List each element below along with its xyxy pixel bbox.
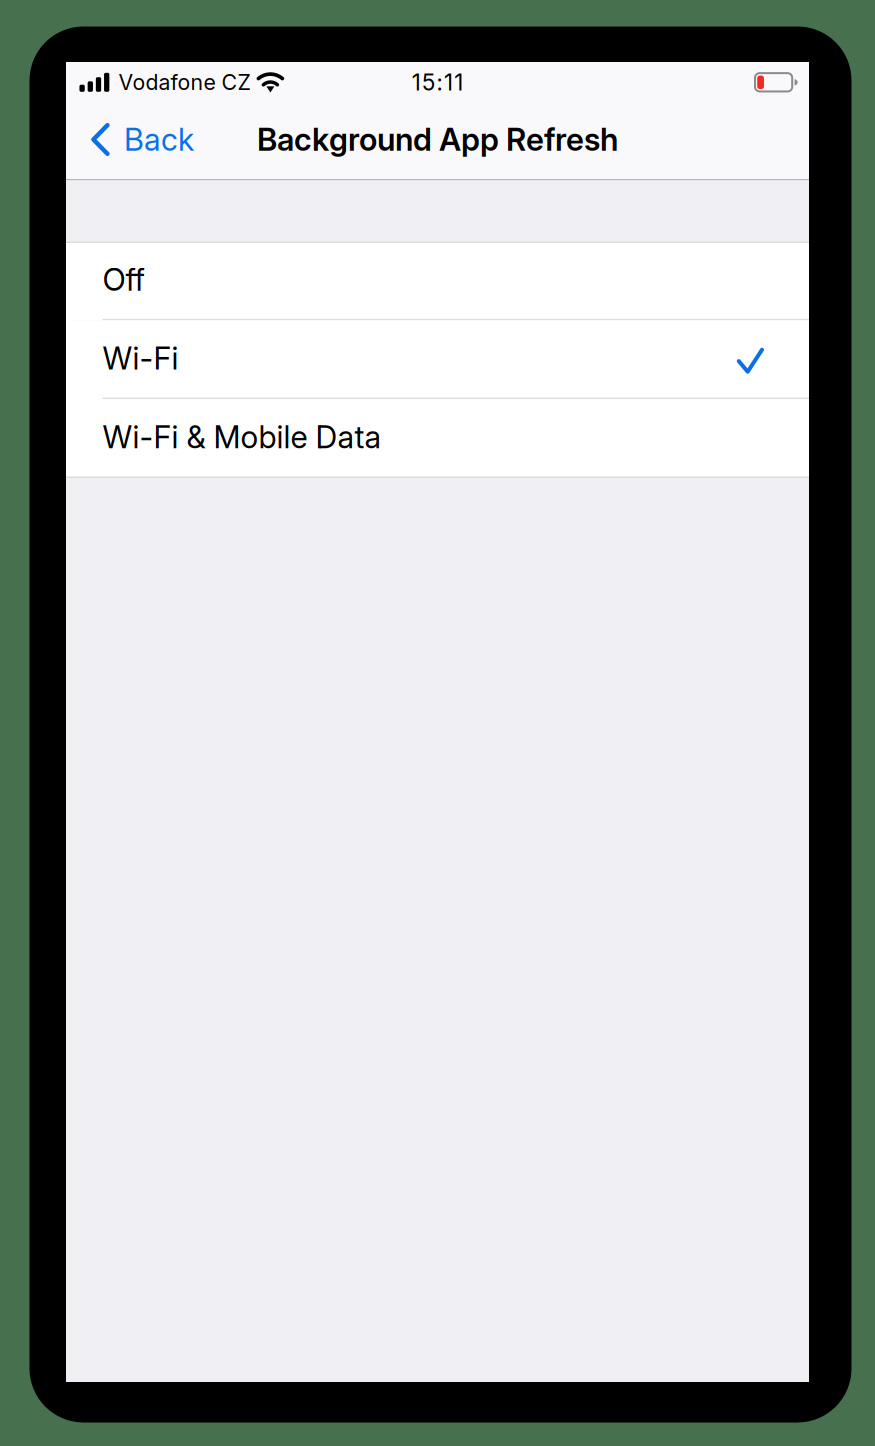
staticText: Back	[124, 121, 194, 158]
staticText: 1	[412, 69, 421, 96]
staticText: Wi-Fi & Mobile Data	[103, 418, 382, 455]
staticText: 1	[444, 69, 453, 96]
staticText: Wi-Fi	[103, 340, 179, 377]
staticText: 1	[454, 69, 463, 96]
button[interactable]: Wi-Fi & Mobile Data	[66, 399, 809, 478]
staticText: Off	[103, 261, 145, 298]
button[interactable]: Off	[66, 242, 809, 320]
button[interactable]: Back	[66, 99, 210, 180]
staticText: :	[436, 69, 442, 96]
button[interactable]: Wi-Fi	[66, 320, 809, 399]
staticText: Vodafone CZ	[118, 69, 250, 95]
staticText: Background App Refresh	[257, 121, 618, 158]
staticText: 5	[422, 69, 435, 96]
